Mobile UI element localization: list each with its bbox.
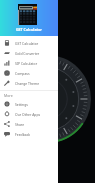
button[interactable]: Our Other Apps bbox=[0, 109, 58, 119]
button[interactable]: Gold Converter bbox=[0, 48, 58, 58]
button[interactable]: Settings bbox=[0, 99, 58, 109]
button[interactable]: Change Theme bbox=[0, 78, 58, 88]
staticText: Feedback bbox=[15, 132, 31, 137]
staticText: GST Calculator bbox=[15, 41, 39, 46]
staticText: Compass bbox=[15, 71, 30, 76]
staticText: Gold Converter bbox=[15, 51, 40, 56]
staticText: Change Theme bbox=[15, 81, 40, 86]
staticText: Share bbox=[15, 122, 25, 127]
staticText: GST Calculator bbox=[16, 27, 42, 32]
button[interactable]: SIP Calculator bbox=[0, 58, 58, 68]
staticText: More bbox=[4, 93, 13, 98]
staticText: SIP Calculator bbox=[15, 61, 38, 66]
button[interactable]: Compass bbox=[0, 68, 58, 78]
staticText: Our Other Apps bbox=[15, 112, 41, 117]
staticText: Settings bbox=[15, 102, 28, 107]
button[interactable]: Share bbox=[0, 119, 58, 129]
button[interactable]: Feedback bbox=[0, 129, 58, 139]
button[interactable]: GST Calculator bbox=[0, 38, 58, 48]
